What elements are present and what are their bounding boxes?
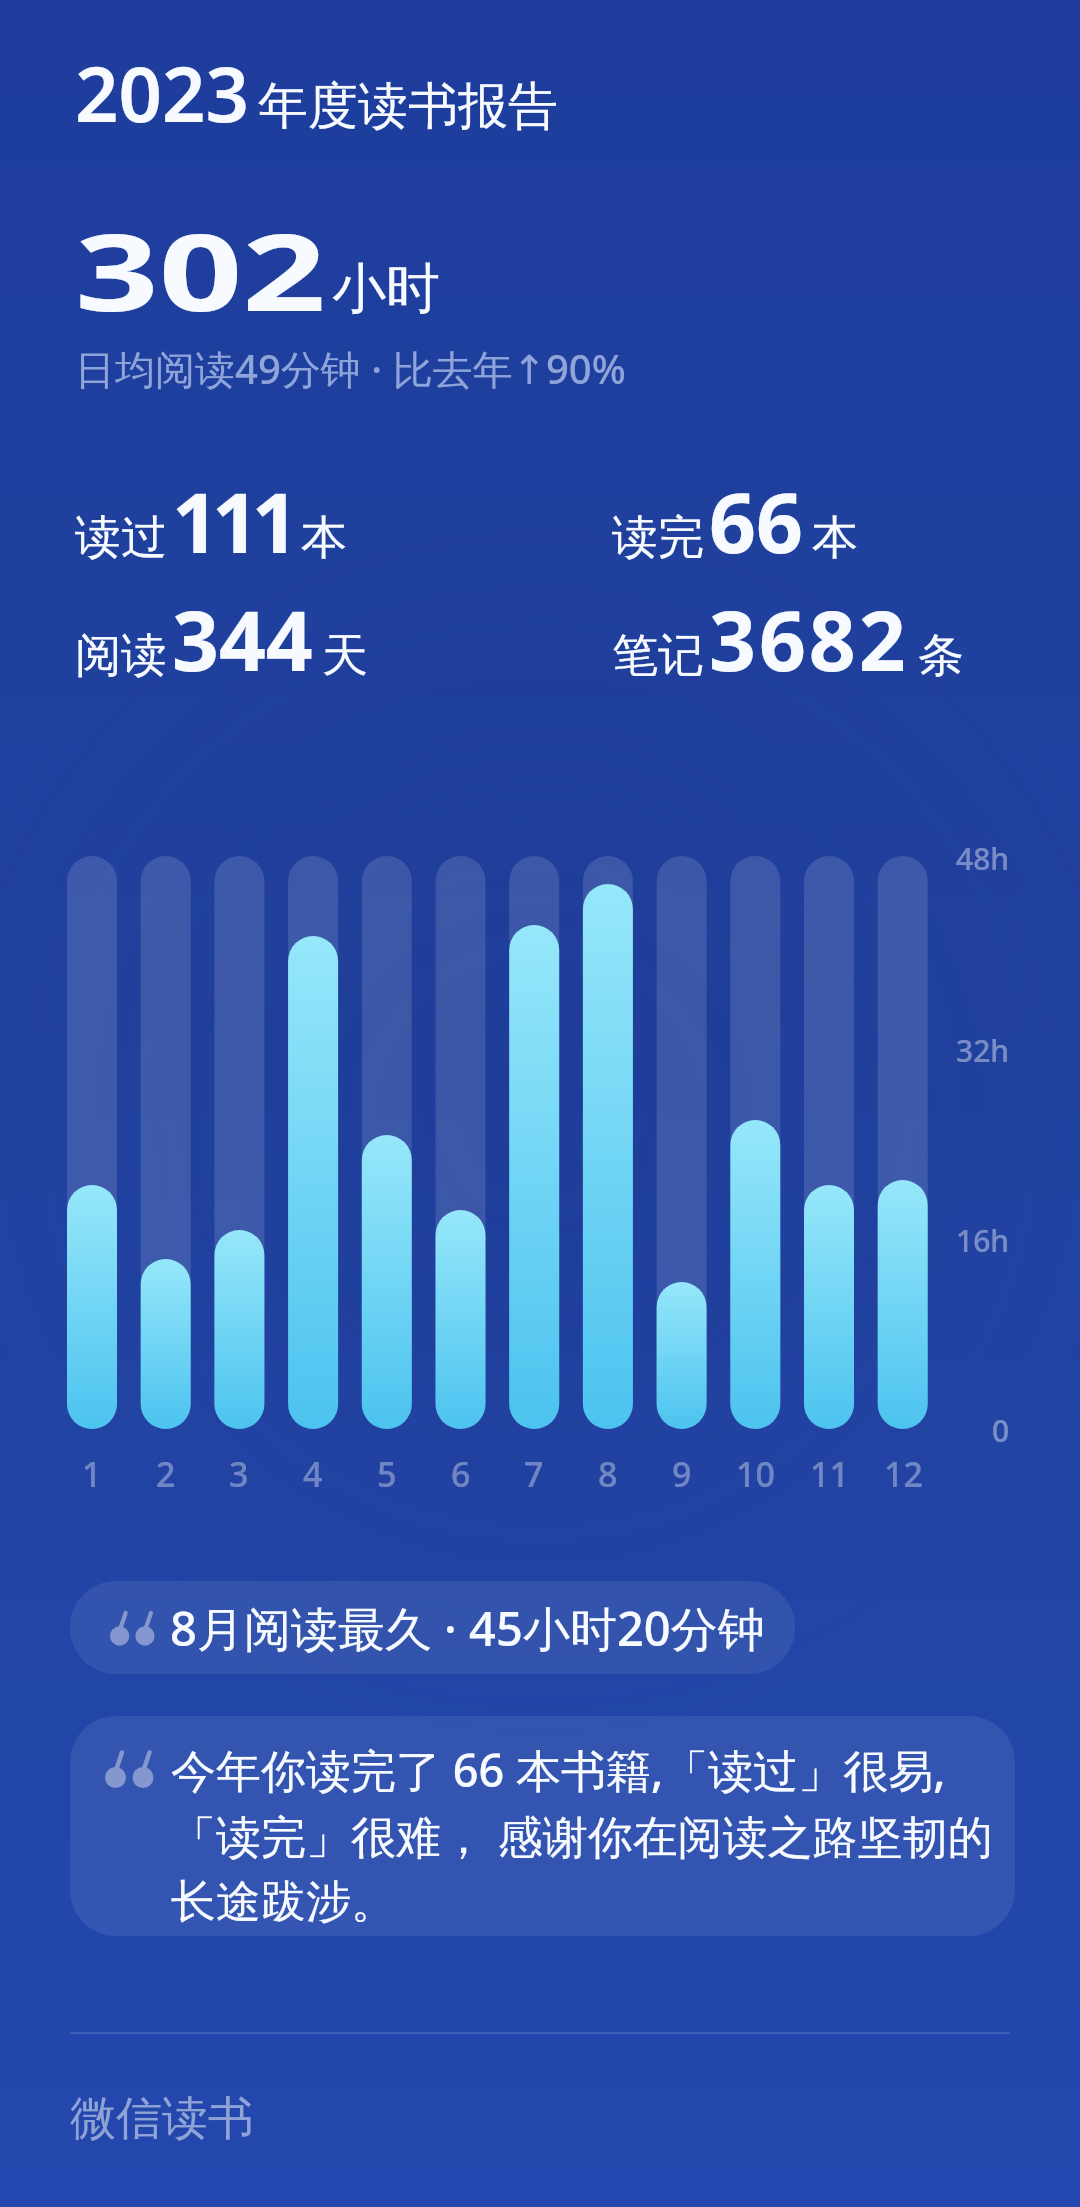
staticText: 6 (451, 1451, 471, 1497)
staticText: 天 (322, 627, 368, 685)
staticText: 读完 (612, 509, 704, 567)
staticText: 32h (956, 1030, 1010, 1071)
staticText: 3 (229, 1451, 249, 1497)
staticText: 1 (82, 1451, 102, 1497)
staticText: 笔记 (612, 627, 704, 685)
staticText: 小时 (332, 255, 440, 323)
staticText: 今年你读完了 66 本书籍,「读过」很易, 「读完」很难， 感谢你在阅读之路坚韧… (171, 1739, 993, 1930)
staticText: 4 (303, 1451, 323, 1497)
staticText: 16h (956, 1220, 1010, 1261)
staticText: 5 (377, 1451, 397, 1497)
staticText: 48h (956, 838, 1010, 879)
staticText: 3682 (709, 583, 909, 695)
staticText: 8月阅读最久 · 45小时20分钟 (170, 1596, 765, 1660)
staticText: 111 (172, 465, 292, 577)
staticText: 11 (810, 1451, 849, 1497)
staticText: 本 (301, 509, 347, 567)
staticText: 7 (524, 1451, 544, 1497)
staticText: 条 (918, 627, 964, 685)
staticText: 本 (812, 509, 858, 567)
staticText: 66 (709, 465, 803, 577)
staticText: 微信读书 (70, 2090, 254, 2148)
staticText: 读过 (75, 509, 167, 567)
staticText: 10 (736, 1451, 775, 1497)
staticText: 302 (75, 198, 326, 342)
staticText: 日均阅读49分钟 · 比去年↑90% (75, 341, 626, 396)
button[interactable]: 今年你读完了 66 本书籍,「读过」很易, 「读完」很难， 感谢你在阅读之路坚韧… (70, 1716, 1015, 1936)
button[interactable]: 8月阅读最久 · 45小时20分钟 (70, 1581, 795, 1674)
staticText: 年度读书报告 (258, 75, 558, 138)
staticText: 344 (172, 583, 313, 695)
staticText: 阅读 (75, 627, 167, 685)
staticText: 9 (672, 1451, 692, 1497)
staticText: 0 (992, 1410, 1010, 1451)
staticText: 12 (884, 1451, 923, 1497)
staticText: 2 (156, 1451, 176, 1497)
staticText: 2023 (75, 41, 249, 145)
staticText: 8 (598, 1451, 618, 1497)
